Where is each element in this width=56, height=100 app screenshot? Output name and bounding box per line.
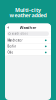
button[interactable]: Manchester — [5, 37, 51, 43]
button[interactable]: Back — [5, 24, 11, 31]
staticText: Manchester — [7, 39, 22, 42]
staticText: Multi-city — [15, 6, 41, 14]
staticText: Berlin — [7, 45, 16, 48]
staticText: weather added — [9, 12, 46, 19]
button[interactable]: Berlin — [5, 43, 51, 49]
button[interactable]: Oslo — [5, 50, 51, 55]
staticText: Weather — [19, 25, 36, 30]
staticText: Search cities — [11, 32, 27, 35]
staticText: Oslo — [7, 51, 13, 54]
